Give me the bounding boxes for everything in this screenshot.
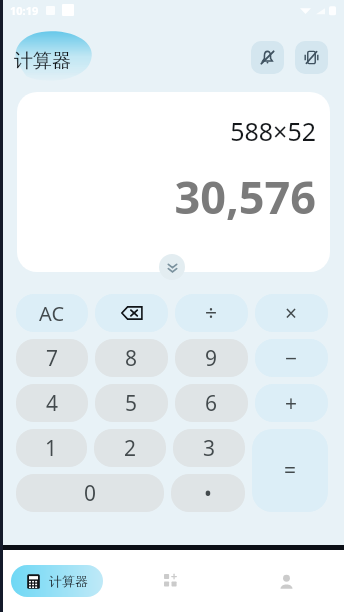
button[interactable]: ×: [255, 294, 328, 332]
staticText: AC: [39, 300, 65, 327]
button[interactable]: Backspace: [95, 294, 168, 332]
button[interactable]: ÷: [175, 294, 248, 332]
staticText: 9: [205, 344, 218, 373]
staticText: •: [204, 479, 212, 508]
staticText: −: [285, 344, 298, 373]
button[interactable]: 4: [16, 384, 88, 422]
button[interactable]: 6: [175, 384, 248, 422]
staticText: 5: [125, 389, 138, 418]
staticText: ×: [285, 299, 298, 328]
staticText: 计算器: [49, 573, 88, 589]
staticText: 588×52: [230, 114, 316, 148]
button[interactable]: =: [252, 429, 328, 512]
staticText: 30,576: [174, 166, 316, 227]
button[interactable]: 5: [95, 384, 168, 422]
button[interactable]: 8: [95, 339, 168, 377]
button[interactable]: •: [171, 474, 245, 512]
staticText: 2: [124, 434, 137, 463]
staticText: 4: [46, 389, 59, 418]
button[interactable]: +: [255, 384, 328, 422]
staticText: 7: [46, 344, 59, 373]
staticText: 1: [45, 434, 58, 463]
button[interactable]: 计算器: [11, 565, 103, 597]
staticText: 6: [205, 389, 218, 418]
staticText: 0: [84, 479, 97, 508]
button[interactable]: Expand history: [159, 254, 185, 280]
staticText: +: [285, 389, 298, 418]
button[interactable]: 7: [16, 339, 88, 377]
staticText: ÷: [205, 299, 218, 328]
button[interactable]: AC: [16, 294, 88, 332]
staticText: 计算器: [14, 49, 71, 73]
staticText: 10:19: [10, 3, 39, 18]
button[interactable]: 588×52: [17, 92, 330, 272]
staticText: 3: [203, 434, 216, 463]
button[interactable]: −: [255, 339, 328, 377]
button[interactable]: 1: [16, 429, 87, 467]
button[interactable]: 3: [173, 429, 245, 467]
button[interactable]: 0: [16, 474, 164, 512]
staticText: 8: [125, 344, 138, 373]
button[interactable]: 9: [175, 339, 248, 377]
staticText: =: [284, 456, 297, 485]
button[interactable]: Tools: [114, 550, 229, 612]
button[interactable]: Vibration off: [295, 41, 328, 74]
button[interactable]: 2: [94, 429, 166, 467]
button[interactable]: Profile: [229, 550, 344, 612]
button[interactable]: Sound off: [251, 41, 284, 74]
